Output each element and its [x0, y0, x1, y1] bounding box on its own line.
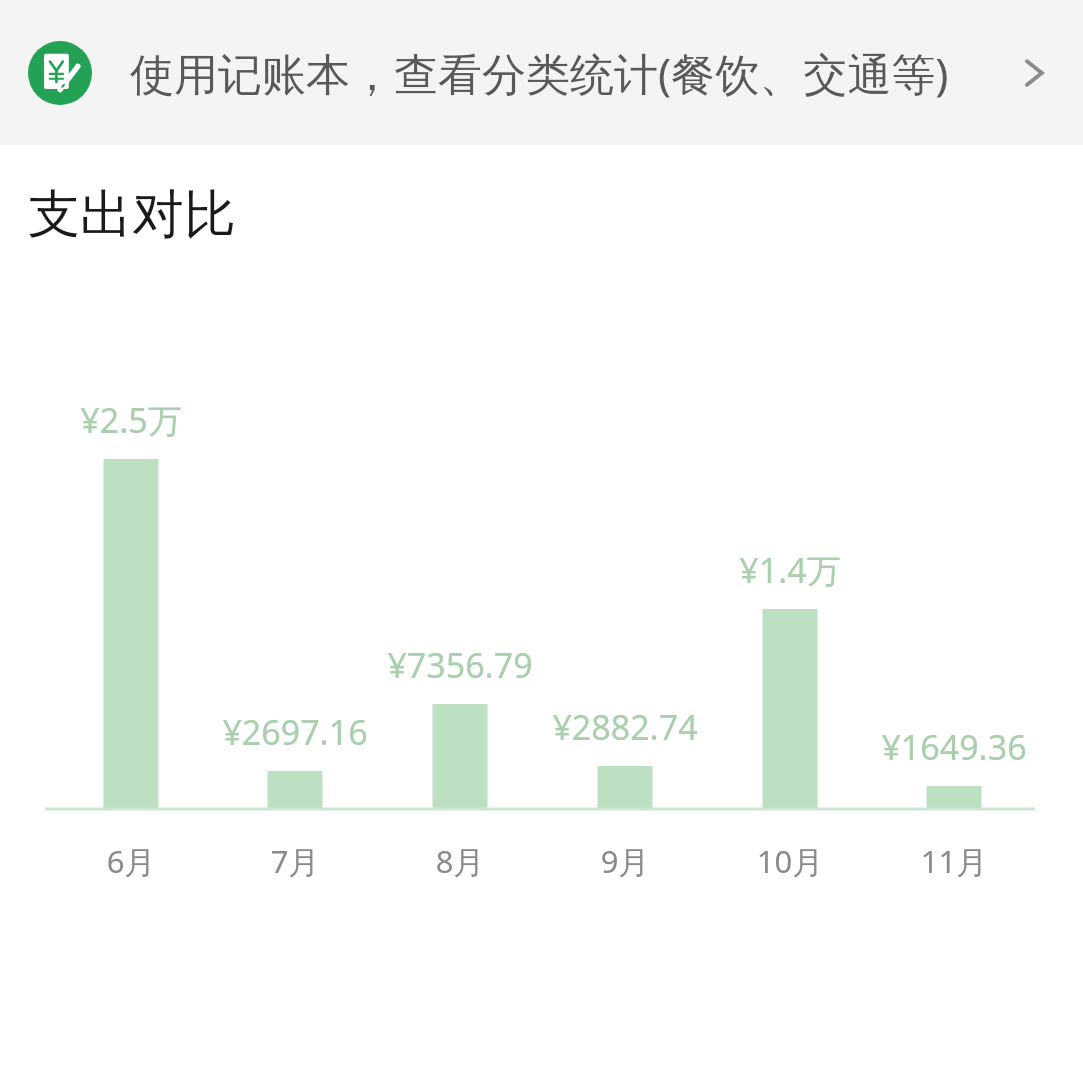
- staticText: 6月: [31, 840, 231, 882]
- staticText: ¥2697.16: [145, 709, 445, 755]
- staticText: ¥2.5万: [0, 397, 281, 443]
- staticText: ¥7356.79: [310, 642, 610, 688]
- staticText: 10月: [690, 840, 890, 882]
- staticText: ¥2882.74: [475, 704, 775, 750]
- staticText: 7月: [195, 840, 395, 882]
- staticText: 使用记账本，查看分类统计(餐饮、交通等): [130, 43, 1003, 103]
- other: Open ledger statistics: [1011, 50, 1057, 96]
- staticText: ¥1649.36: [804, 724, 1083, 770]
- button[interactable]: 使用记账本，查看分类统计(餐饮、交通等): [0, 0, 1083, 145]
- staticText: 9月: [525, 840, 725, 882]
- staticText: ¥1.4万: [640, 547, 940, 593]
- staticText: 8月: [360, 840, 560, 882]
- staticText: 支出对比: [28, 182, 236, 248]
- staticText: 11月: [854, 840, 1054, 882]
